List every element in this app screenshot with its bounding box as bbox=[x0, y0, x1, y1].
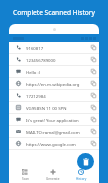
button[interactable]: Copy bbox=[88, 66, 99, 77]
button[interactable]: Copy bbox=[88, 102, 99, 113]
button[interactable]: It's great! Your application bbox=[9, 114, 99, 125]
staticText: Hello :) bbox=[26, 69, 88, 75]
button[interactable]: Copy bbox=[88, 126, 99, 137]
button[interactable]: Complete Scanned History bbox=[0, 0, 108, 24]
staticText: https://en.m.wikipedia.org bbox=[26, 81, 88, 87]
button[interactable]: https://www.google.com bbox=[9, 138, 99, 149]
button[interactable]: Copy bbox=[88, 90, 99, 101]
button[interactable]: Copy bbox=[88, 78, 99, 89]
button[interactable]: History bbox=[67, 166, 95, 183]
staticText: https://www.google.com bbox=[26, 141, 88, 147]
button[interactable]: VG95BSN 11 00 SPN bbox=[9, 102, 99, 113]
staticText: VG95BSN 11 00 SPN bbox=[26, 105, 88, 111]
staticText: 9160817 bbox=[26, 45, 88, 51]
button[interactable]: Scan bbox=[11, 166, 39, 183]
button[interactable]: 9160817 bbox=[9, 42, 99, 53]
staticText: It's great! Your application bbox=[26, 117, 88, 123]
staticText: History bbox=[76, 177, 87, 181]
button[interactable]: 17212984 bbox=[9, 90, 99, 101]
staticText: Generate bbox=[46, 177, 60, 181]
staticText: Complete Scanned History bbox=[13, 8, 95, 17]
button[interactable]: MAILTO:ramal@gmail.com bbox=[9, 126, 99, 137]
button[interactable]: Copy bbox=[88, 42, 99, 53]
button[interactable]: https://en.m.wikipedia.org bbox=[9, 78, 99, 89]
button[interactable]: Delete all bbox=[77, 153, 94, 170]
button[interactable]: Copy bbox=[88, 138, 99, 149]
button[interactable]: Copy bbox=[88, 54, 99, 65]
staticText: MAILTO:ramal@gmail.com bbox=[26, 129, 88, 135]
staticText: 17212984 bbox=[26, 93, 88, 99]
button[interactable]: Copy bbox=[88, 114, 99, 125]
button[interactable]: Generate bbox=[39, 166, 67, 183]
button[interactable]: 123456789000 bbox=[9, 54, 99, 65]
staticText: 123456789000 bbox=[26, 57, 88, 63]
staticText: Scan bbox=[22, 177, 29, 181]
button[interactable]: Hello :) bbox=[9, 66, 99, 77]
